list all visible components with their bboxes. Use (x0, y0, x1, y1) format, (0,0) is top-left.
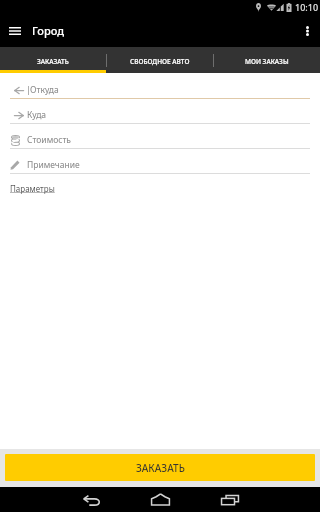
button[interactable]: ЗАКАЗАТЬ (5, 454, 315, 481)
staticText: Город (32, 23, 65, 38)
staticText: ЗАКАЗАТЬ (136, 461, 185, 475)
staticText: Примечание (27, 159, 80, 171)
button[interactable]: Back (57, 487, 126, 512)
staticText: СВОБОДНОЕ АВТО (130, 57, 190, 66)
button[interactable]: Home (126, 487, 195, 512)
staticText: Стоимость (27, 134, 71, 146)
button[interactable]: Примечание (10, 157, 310, 182)
button[interactable]: Откуда (10, 82, 310, 107)
button[interactable]: МОИ ЗАКАЗЫ (213, 47, 320, 73)
button[interactable]: Navigation menu (0, 15, 29, 47)
staticText: Откуда (30, 84, 59, 96)
button[interactable]: ЗАКАЗАТЬ (0, 47, 106, 73)
staticText: Параметры (10, 183, 55, 194)
staticText: МОИ ЗАКАЗЫ (245, 57, 289, 66)
button[interactable]: Куда (10, 107, 310, 132)
button[interactable]: More options (294, 15, 320, 47)
button[interactable]: Стоимость (10, 132, 310, 157)
button[interactable]: Параметры (10, 183, 55, 194)
staticText: ЗАКАЗАТЬ (37, 57, 69, 66)
staticText: Куда (27, 109, 47, 121)
button[interactable]: СВОБОДНОЕ АВТО (106, 47, 213, 73)
button[interactable]: Recent apps (195, 487, 264, 512)
staticText: 10:10 (295, 1, 319, 13)
